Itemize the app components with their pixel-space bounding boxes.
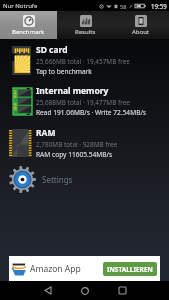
button[interactable]: Results <box>57 11 113 39</box>
staticText: 25,666MB total · 19,457MB free <box>36 57 130 66</box>
staticText: Internal memory <box>36 85 109 97</box>
staticText: 19:59 <box>151 2 167 10</box>
button[interactable]: Benchmark <box>0 11 57 39</box>
staticText: 58 <box>120 3 127 10</box>
staticText: 25,688MB total · 19,477MB free <box>36 98 130 107</box>
button[interactable]: INSTALLIEREN <box>103 262 157 276</box>
button[interactable]: RAM <box>0 122 169 163</box>
staticText: INSTALLIEREN <box>107 265 153 274</box>
staticText: Settings <box>42 174 73 185</box>
staticText: 2,780MB total · 928MB free <box>36 140 118 149</box>
button[interactable]: Settings <box>0 163 169 195</box>
button[interactable]: About <box>113 11 169 39</box>
staticText: RAM <box>36 127 56 139</box>
button[interactable]: Recent apps <box>112 281 132 300</box>
staticText: Nur Notrufe <box>3 2 38 10</box>
staticText: Amazon App <box>30 263 81 275</box>
staticText: Read 191.06MB/s · Write 72.54MB/s <box>36 108 147 117</box>
staticText: RAM copy 11605.54MB/s <box>36 150 113 159</box>
button[interactable]: Back <box>38 281 58 300</box>
staticText: Tap to benchmark <box>36 67 92 76</box>
button[interactable]: Internal memory <box>0 80 169 122</box>
staticText: SD card <box>36 44 68 56</box>
button[interactable]: Amazon App <box>9 256 160 281</box>
button[interactable]: SD card <box>0 39 169 80</box>
button[interactable]: Home <box>75 281 95 300</box>
staticText: Results <box>75 28 96 36</box>
staticText: About <box>132 28 150 36</box>
staticText: Benchmark <box>12 28 45 36</box>
